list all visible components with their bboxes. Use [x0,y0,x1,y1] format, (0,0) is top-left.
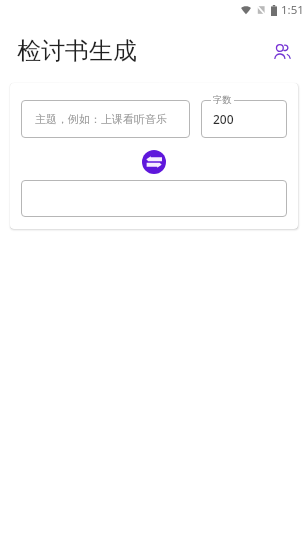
staticText: 检讨书生成 [17,36,137,66]
button[interactable]: Generate [142,150,166,174]
staticText: 字数 [213,94,232,106]
button[interactable]: 200 [201,100,287,138]
staticText: 200 [213,111,234,127]
staticText: 主题，例如：上课看听音乐 [35,112,167,126]
button[interactable] [21,180,287,217]
button[interactable]: Account [264,33,300,69]
staticText: 1:51 [281,2,304,18]
button[interactable]: 主题，例如：上课看听音乐 [21,100,190,138]
